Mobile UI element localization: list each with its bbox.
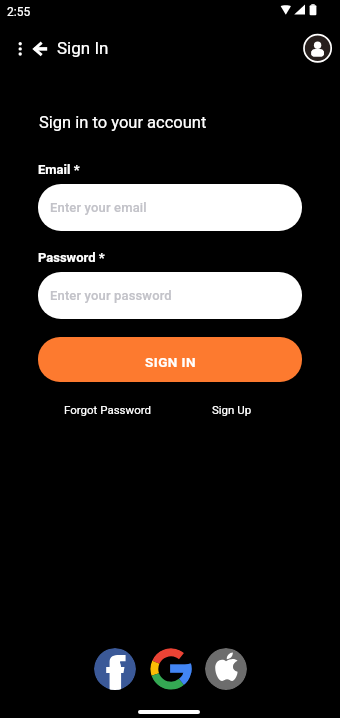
button[interactable]: Sign in with Google xyxy=(150,648,192,690)
staticText: SIGN IN xyxy=(145,354,196,370)
staticText: Sign in to your account xyxy=(39,113,207,132)
button[interactable]: Account xyxy=(302,32,334,64)
staticText: Enter your email xyxy=(50,200,147,215)
button[interactable]: Sign in with Facebook xyxy=(94,648,136,690)
button[interactable]: Enter your password xyxy=(38,272,302,319)
staticText: Sign Up xyxy=(212,403,252,416)
staticText: 2:55 xyxy=(7,5,31,19)
button[interactable]: Enter your email xyxy=(38,184,302,231)
staticText: Email * xyxy=(38,162,80,177)
button[interactable]: More options xyxy=(8,36,32,60)
staticText: Forgot Password xyxy=(64,403,152,416)
button[interactable]: Back xyxy=(29,36,54,61)
staticText: Password * xyxy=(38,250,105,265)
button[interactable]: Sign in with Apple xyxy=(205,648,247,690)
button[interactable]: SIGN IN xyxy=(38,337,302,382)
staticText: Enter your password xyxy=(50,288,172,303)
button[interactable]: Forgot Password xyxy=(47,397,169,421)
button[interactable]: Sign Up xyxy=(200,397,264,421)
staticText: Sign In xyxy=(57,38,109,58)
